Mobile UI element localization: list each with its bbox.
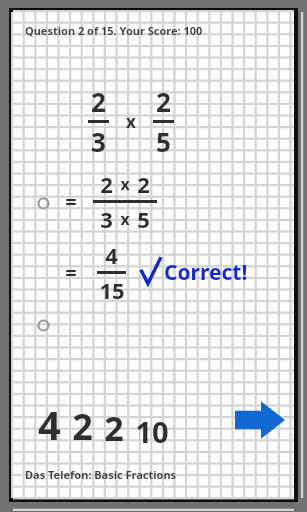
staticText: 2 xyxy=(91,84,106,119)
staticText: 2 xyxy=(156,84,171,119)
staticText: x xyxy=(126,110,136,133)
staticText: = xyxy=(65,259,77,286)
staticText: 2 xyxy=(100,169,113,199)
staticText: Question 2 of 15. Your Score: 100 xyxy=(25,23,203,38)
staticText: Das Telefon: Basic Fractions xyxy=(25,467,177,482)
button[interactable]: Next question xyxy=(235,400,285,440)
staticText: x xyxy=(120,208,130,230)
staticText: 10 xyxy=(135,412,169,451)
staticText: 5 xyxy=(137,204,150,234)
staticText: 3 xyxy=(100,204,113,234)
staticText: 3 xyxy=(91,124,106,159)
staticText: 2 xyxy=(104,405,124,451)
staticText: = xyxy=(65,188,77,215)
button[interactable]: 2 xyxy=(101,405,127,451)
button[interactable]: 10 xyxy=(132,412,172,451)
staticText: 4 xyxy=(105,240,118,270)
button[interactable]: 4 xyxy=(35,397,64,451)
staticText: x xyxy=(120,173,130,195)
staticText: 2 xyxy=(72,402,93,451)
staticText: 4 xyxy=(38,397,61,451)
staticText: 5 xyxy=(156,124,171,159)
button[interactable]: 2 xyxy=(69,402,96,451)
staticText: 2 xyxy=(137,169,150,199)
staticText: 15 xyxy=(99,275,125,305)
staticText: Correct! xyxy=(164,258,248,287)
